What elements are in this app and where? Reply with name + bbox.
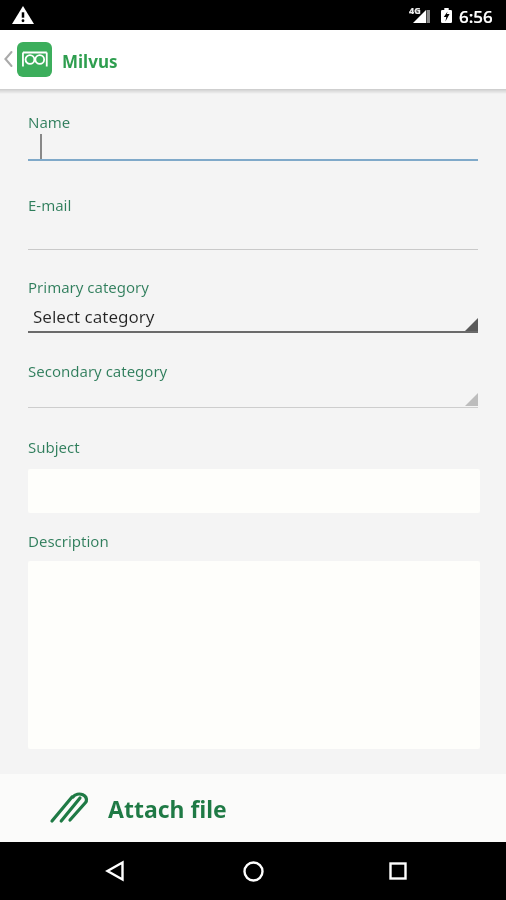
staticText: 4G [409,4,421,16]
staticText: 6:56 [459,5,493,28]
button[interactable] [233,854,273,888]
button[interactable] [28,385,478,408]
staticText: Secondary category [28,361,168,381]
button[interactable] [378,854,418,888]
staticText: E-mail [28,195,72,215]
staticText: Name [28,112,71,132]
staticText: Select category [33,305,155,328]
staticText: Attach file [108,793,227,824]
staticText: Primary category [28,277,149,297]
button[interactable] [95,854,135,888]
staticText: Description [28,531,109,551]
staticText: Milvus [62,50,118,73]
button[interactable]: Attach file [0,774,506,842]
button[interactable]: Milvus [0,30,506,89]
staticText: Subject [28,437,80,457]
button[interactable]: Select category [28,300,478,333]
